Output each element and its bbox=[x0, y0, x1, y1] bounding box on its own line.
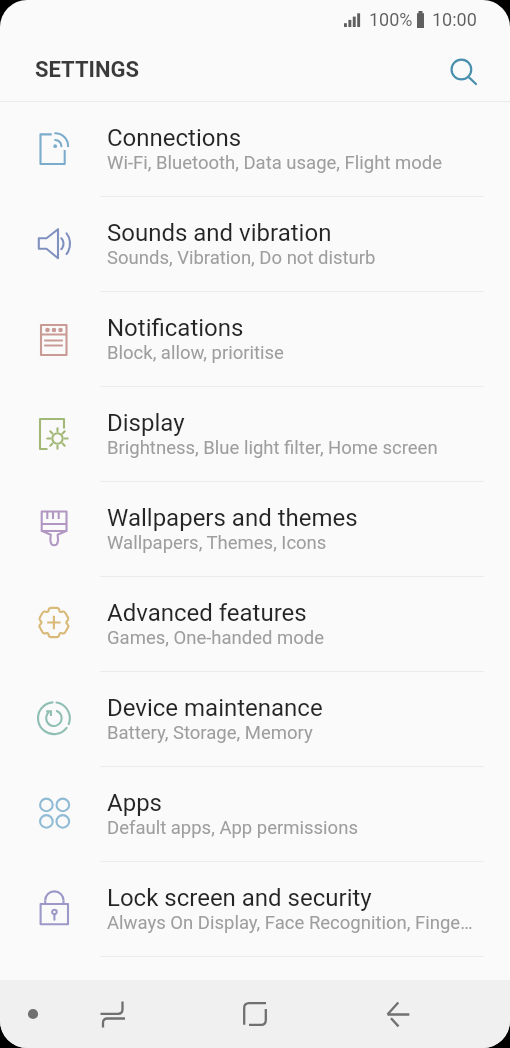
staticText: Notifications bbox=[107, 314, 244, 342]
staticText: Block, allow, prioritise bbox=[107, 342, 284, 364]
staticText: Lock screen and security bbox=[107, 884, 372, 912]
button[interactable]: Device maintenance bbox=[0, 672, 510, 767]
staticText: Default apps, App permissions bbox=[107, 817, 358, 839]
button[interactable]: Back bbox=[373, 989, 423, 1039]
staticText: 100% bbox=[369, 9, 413, 30]
staticText: Sounds and vibration bbox=[107, 219, 332, 247]
button[interactable]: Apps bbox=[0, 767, 510, 862]
button[interactable]: Notifications bbox=[0, 292, 510, 387]
button[interactable]: Search bbox=[440, 49, 488, 97]
staticText: 10:00 bbox=[432, 9, 477, 30]
button[interactable]: Menu bbox=[12, 993, 54, 1035]
button[interactable]: Recent apps bbox=[88, 989, 138, 1039]
button[interactable]: Home bbox=[230, 989, 280, 1039]
staticText: Wallpapers, Themes, Icons bbox=[107, 532, 327, 554]
staticText: Connections bbox=[107, 124, 242, 152]
staticText: Brightness, Blue light filter, Home scre… bbox=[107, 437, 438, 459]
staticText: Advanced features bbox=[107, 599, 307, 627]
staticText: Wallpapers and themes bbox=[107, 504, 358, 532]
button[interactable]: Sounds and vibration bbox=[0, 197, 510, 292]
staticText: Games, One-handed mode bbox=[107, 627, 325, 649]
staticText: Device maintenance bbox=[107, 694, 323, 722]
button[interactable]: Connections bbox=[0, 102, 510, 197]
button[interactable]: Advanced features bbox=[0, 577, 510, 672]
button[interactable]: Wallpapers and themes bbox=[0, 482, 510, 577]
staticText: SETTINGS bbox=[35, 57, 139, 83]
button[interactable]: Lock screen and security bbox=[0, 862, 510, 957]
staticText: Sounds, Vibration, Do not disturb bbox=[107, 247, 376, 269]
staticText: Always On Display, Face Recognition, Fin… bbox=[107, 912, 473, 934]
staticText: Wi-Fi, Bluetooth, Data usage, Flight mod… bbox=[107, 152, 443, 174]
staticText: Display bbox=[107, 409, 185, 437]
button[interactable]: Display bbox=[0, 387, 510, 482]
staticText: Battery, Storage, Memory bbox=[107, 722, 313, 744]
staticText: Apps bbox=[107, 789, 162, 817]
